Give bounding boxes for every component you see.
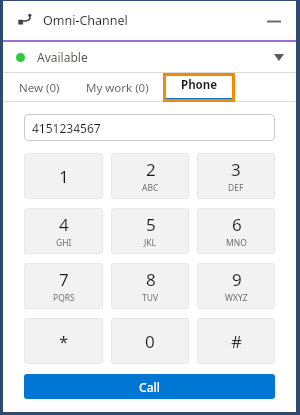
button[interactable]: 9 (197, 263, 275, 309)
button[interactable]: 4 (24, 208, 103, 254)
staticText: # (231, 330, 242, 353)
staticText: Available (37, 49, 88, 65)
button[interactable]: * (24, 318, 103, 364)
staticText: TUV (142, 292, 159, 304)
staticText: 3 (231, 158, 241, 181)
staticText: 4 (59, 213, 69, 236)
button[interactable]: 8 (111, 263, 189, 309)
staticText: ABC (142, 182, 159, 194)
staticText: 6 (232, 213, 242, 236)
button[interactable]: Call (24, 374, 275, 399)
staticText: PQRS (53, 292, 75, 304)
button[interactable]: 7 (24, 263, 103, 309)
button[interactable]: Available (3, 42, 296, 72)
staticText: 1 (59, 165, 69, 188)
staticText: 8 (146, 268, 156, 291)
other: Omni-Channel (17, 13, 33, 29)
button[interactable]: 3 (197, 153, 275, 199)
staticText: Phone (181, 77, 218, 93)
button[interactable]: My work (0) (80, 73, 155, 102)
button[interactable]: # (197, 318, 275, 364)
button[interactable]: 4151234567 (24, 114, 275, 141)
button[interactable]: 0 (111, 318, 189, 364)
button[interactable]: 6 (197, 208, 275, 254)
staticText: JKL (144, 237, 157, 249)
staticText: New (0) (19, 80, 60, 96)
button[interactable]: Omni-Channel (3, 1, 296, 40)
button[interactable]: Minimize (264, 11, 284, 31)
button[interactable]: New (0) (13, 73, 66, 102)
staticText: 4151234567 (32, 120, 101, 136)
staticText: Call (139, 379, 160, 395)
button[interactable]: 5 (111, 208, 189, 254)
staticText: WXYZ (225, 292, 248, 304)
staticText: My work (0) (86, 80, 149, 96)
staticText: * (59, 330, 69, 353)
staticText: 9 (232, 268, 242, 291)
staticText: 7 (59, 268, 69, 291)
staticText: 5 (146, 213, 156, 236)
staticText: Omni-Channel (43, 12, 128, 29)
button[interactable]: Phone (163, 73, 235, 102)
staticText: 0 (145, 330, 155, 353)
button[interactable]: 2 (111, 153, 189, 199)
staticText: MNO (226, 237, 247, 249)
staticText: GHI (56, 237, 72, 249)
button[interactable]: 1 (24, 153, 103, 199)
staticText: 2 (146, 158, 156, 181)
staticText: DEF (228, 182, 244, 194)
